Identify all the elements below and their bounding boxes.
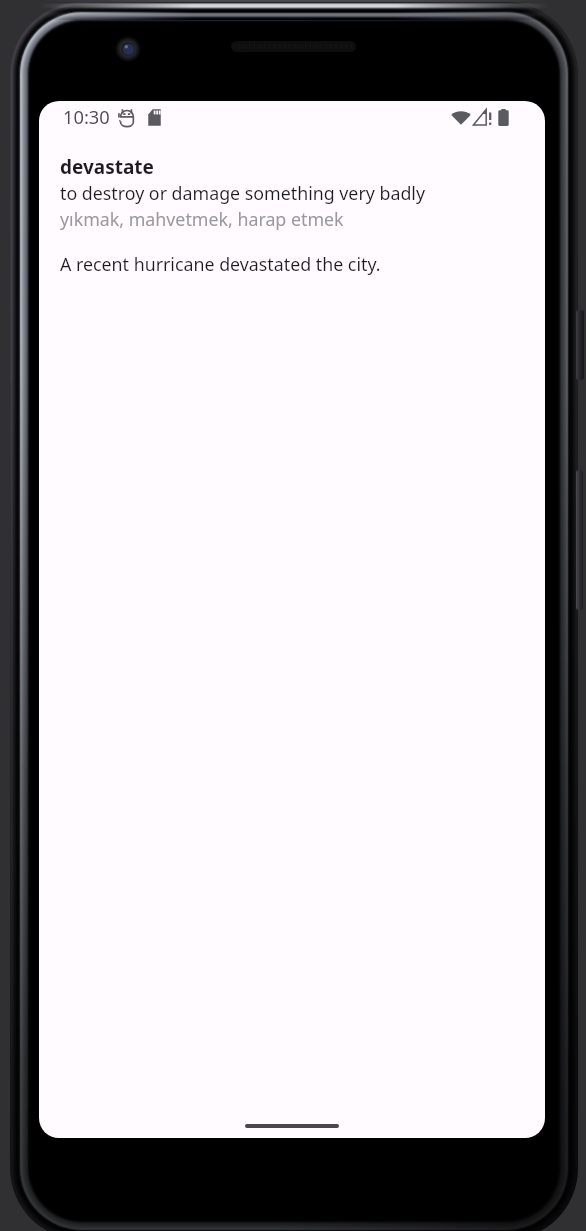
staticText: 10:30 xyxy=(63,104,110,129)
other: Home gesture handle xyxy=(245,1124,339,1128)
staticText: yıkmak, mahvetmek, harap etmek xyxy=(60,207,344,231)
button[interactable]: devastate xyxy=(39,139,545,276)
staticText: A recent hurricane devastated the city. xyxy=(60,252,381,276)
staticText: to destroy or damage something very badl… xyxy=(60,181,425,205)
staticText: devastate xyxy=(60,154,154,180)
